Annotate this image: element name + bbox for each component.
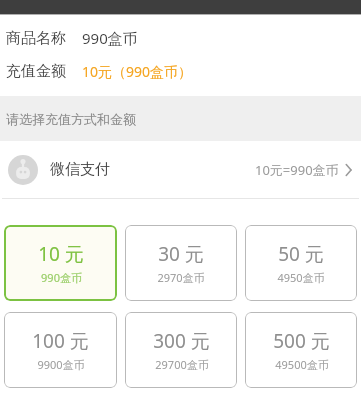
staticText: 请选择充值方式和金额 [6,111,136,127]
staticText: 49500盒币 [275,357,329,372]
staticText: 50 元 [278,241,324,267]
staticText: 10元（990盒币） [82,62,193,81]
button[interactable]: 10 元 [4,225,117,301]
staticText: 充值金额 [6,62,66,81]
staticText: 990盒币 [82,28,138,48]
staticText: 300 元 [153,328,210,354]
button[interactable]: 300 元 [125,312,237,388]
staticText: 2970盒币 [157,270,205,285]
button[interactable]: 微信支付 [0,141,361,198]
staticText: 9900盒币 [37,357,85,372]
staticText: 微信支付 [50,160,110,179]
other: 选择支付方式 [344,162,353,178]
button[interactable]: 30 元 [125,225,237,301]
staticText: 100 元 [32,328,89,354]
staticText: 10 元 [38,241,84,267]
button[interactable]: 500 元 [245,312,357,388]
button[interactable]: 50 元 [245,225,357,301]
button[interactable]: 100 元 [4,312,117,388]
staticText: 商品名称 [6,29,66,48]
staticText: 30 元 [158,241,204,267]
staticText: 990盒币 [41,270,82,285]
staticText: 500 元 [273,328,330,354]
staticText: 29700盒币 [155,357,209,372]
staticText: 4950盒币 [277,270,325,285]
staticText: 10元=990盒币 [255,161,339,179]
